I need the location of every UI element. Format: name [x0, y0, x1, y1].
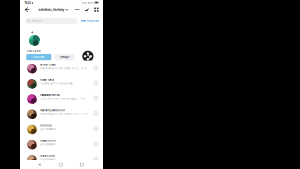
button[interactable]: Rayan Mbat: [20, 76, 103, 91]
staticText: marlahm_marie2000: [40, 109, 65, 112]
button[interactable]: Camera: [93, 65, 98, 70]
staticText: @ritzjackson: [40, 158, 56, 161]
button[interactable]: Back: [23, 5, 31, 14]
button[interactable]: Camera: [93, 126, 98, 131]
button[interactable]: Camera: [93, 81, 98, 86]
button[interactable]: New message: [84, 5, 90, 14]
button[interactable]: tanyatampiernick: [20, 91, 103, 106]
staticText: solution_history: [38, 7, 64, 12]
staticText: Has changed the Raine to it… 4 w: [40, 112, 87, 115]
button[interactable]: daisy.c.odd: [20, 152, 103, 167]
button[interactable]: Camera: [93, 111, 98, 116]
staticText: @ritzjackson: [40, 127, 56, 131]
button[interactable]: marlahm_marie2000: [20, 106, 103, 121]
button[interactable]: Camera: [93, 96, 98, 101]
button[interactable]: Menu: [93, 5, 100, 14]
staticText: tanyatampiernick: [40, 94, 59, 97]
button[interactable]: Camera: [93, 141, 98, 146]
staticText: Anna Salerno: [26, 50, 40, 53]
staticText: has changed the name to S… 4 w: [40, 67, 86, 70]
button[interactable]: Notes: [74, 5, 80, 14]
staticText: danya.fulton: [40, 139, 56, 142]
button[interactable]: Back: [38, 162, 42, 167]
staticText: daisy.c.odd: [40, 154, 55, 157]
button[interactable]: Home: [59, 162, 63, 167]
staticText: 11:42: [24, 1, 31, 5]
staticText: Search: [32, 19, 43, 23]
staticText: @ritzjackson: [40, 143, 56, 146]
staticText: And welcome new message… 4 w: [40, 97, 85, 100]
staticText: kristen.hayes: [40, 63, 55, 66]
button[interactable]: Connect: [26, 54, 51, 60]
button[interactable]: New requests: [81, 18, 99, 24]
staticText: ritz.hiSa: [40, 124, 51, 127]
staticText: Rayan Mbat: [40, 78, 54, 81]
button[interactable]: ritz.hiSa: [20, 121, 103, 137]
button[interactable]: Recents: [79, 162, 84, 167]
staticText: Connect: [33, 56, 44, 59]
staticText: New requests: [81, 19, 99, 22]
button[interactable]: kristen.hayes: [20, 61, 103, 76]
button[interactable]: Message: [55, 54, 75, 60]
staticText: 76%: [88, 1, 94, 4]
button[interactable]: Camera: [93, 157, 98, 162]
button[interactable]: Profile photo: [29, 35, 40, 46]
staticText: Thanks Jeff u a Real Man: [40, 82, 73, 85]
staticText: LTE: [82, 1, 87, 4]
button[interactable]: solution_history: [38, 5, 69, 14]
button[interactable]: danya.fulton: [20, 137, 103, 152]
staticText: Message: [60, 56, 69, 59]
